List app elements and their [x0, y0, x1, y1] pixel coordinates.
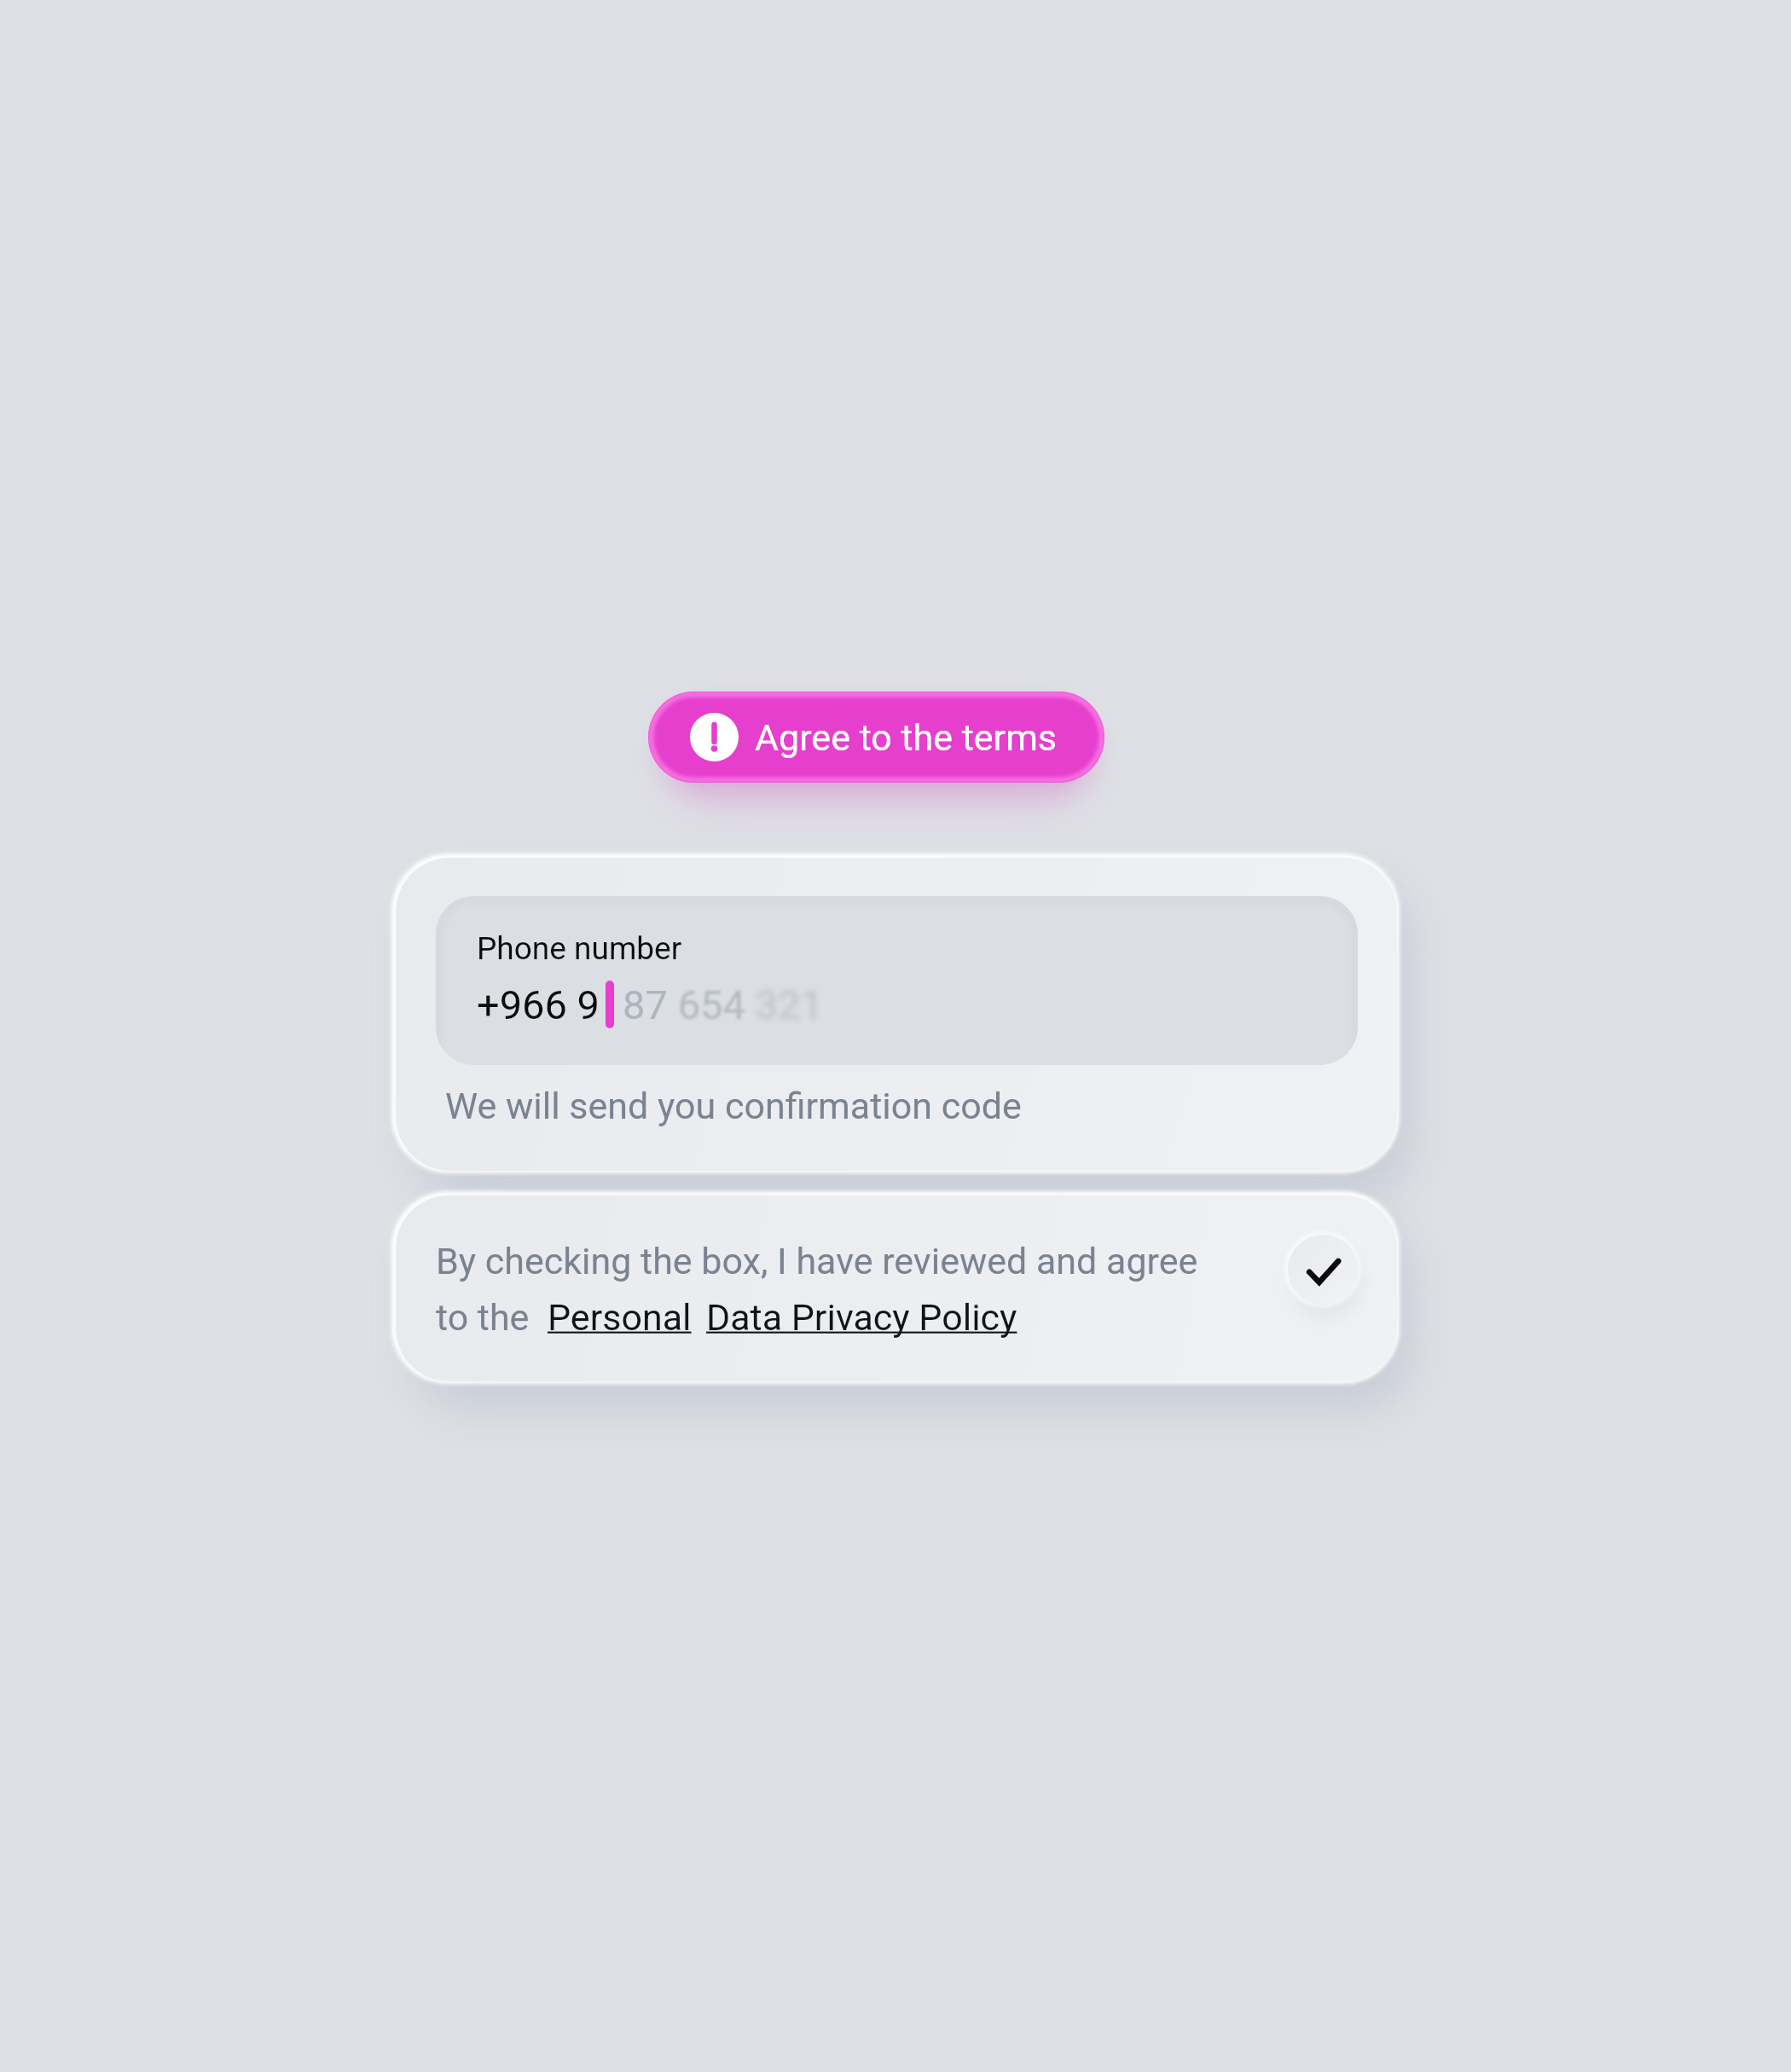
staticText: 321	[745, 981, 823, 1028]
staticText: By checking the box, I have reviewed and…	[436, 1240, 1198, 1282]
staticText: 87	[623, 981, 668, 1028]
button[interactable]: Agree to the terms	[648, 692, 1104, 783]
button[interactable]: Agree to privacy policy checkbox, checke…	[1288, 1235, 1359, 1305]
staticText: Personal	[548, 1296, 692, 1339]
staticText: to the	[436, 1296, 530, 1339]
staticText: Data Privacy Policy	[706, 1296, 1017, 1339]
button[interactable]: Phone number input	[436, 896, 1358, 1065]
staticText: 654	[668, 981, 745, 1028]
staticText: +966 9	[477, 981, 600, 1028]
staticText: Agree to the terms	[755, 716, 1058, 759]
staticText: We will send you confirmation code	[445, 1085, 1022, 1127]
staticText: Phone number	[477, 930, 682, 967]
button[interactable]: Personal	[548, 1296, 1017, 1339]
